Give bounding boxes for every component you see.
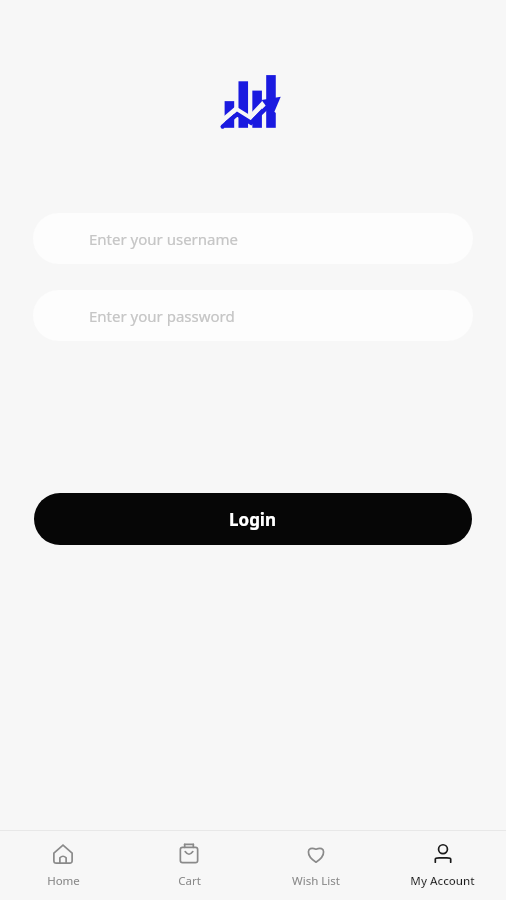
staticText: Enter your username	[89, 229, 238, 249]
staticText: Home	[47, 873, 80, 889]
staticText: Wish List	[292, 873, 340, 889]
staticText: My Account	[410, 873, 475, 889]
button[interactable]: Cart	[126, 831, 252, 900]
staticText: Cart	[178, 873, 201, 889]
staticText: Enter your password	[89, 306, 235, 326]
button[interactable]: Enter your password	[33, 290, 473, 341]
button[interactable]: Home	[0, 831, 126, 900]
staticText: Login	[229, 508, 277, 531]
button[interactable]: Wish List	[252, 831, 379, 900]
button[interactable]: Login	[34, 493, 472, 545]
button[interactable]: Enter your username	[33, 213, 473, 264]
button[interactable]: My Account	[379, 831, 506, 900]
